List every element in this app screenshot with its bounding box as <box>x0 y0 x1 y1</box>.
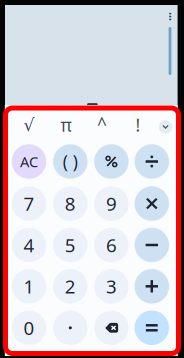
staticText: √ <box>23 115 34 135</box>
button[interactable]: Divide <box>135 144 169 179</box>
button[interactable]: 2 <box>53 269 87 304</box>
button[interactable]: Percent <box>94 144 129 179</box>
staticText: 8 <box>65 191 76 216</box>
staticText: 5 <box>65 233 76 257</box>
button[interactable]: Plus <box>135 269 169 304</box>
staticText: 3 <box>106 274 117 299</box>
staticText: 9 <box>106 191 117 216</box>
button[interactable]: Equals <box>135 311 169 345</box>
button[interactable]: π <box>51 112 81 138</box>
button[interactable]: Decimal point <box>53 311 87 345</box>
button[interactable]: ( ) <box>53 144 87 179</box>
button[interactable]: Minus <box>135 228 169 262</box>
button[interactable]: 7 <box>12 186 46 221</box>
staticText: ^ <box>97 112 107 135</box>
staticText: ! <box>135 113 140 136</box>
staticText: 1 <box>23 274 34 299</box>
button[interactable]: 0 <box>12 311 46 345</box>
staticText: 7 <box>23 191 34 216</box>
button[interactable]: Delete <box>94 311 129 345</box>
button[interactable]: √ <box>14 112 44 138</box>
button[interactable]: 1 <box>12 269 46 304</box>
staticText: 6 <box>106 233 117 257</box>
staticText: 4 <box>23 233 34 257</box>
button[interactable]: ! <box>123 112 153 138</box>
button[interactable]: 3 <box>94 269 129 304</box>
button[interactable]: ^ <box>87 111 117 137</box>
button[interactable]: 5 <box>53 228 87 262</box>
button[interactable]: Show more functions <box>155 117 175 137</box>
staticText: π <box>60 113 71 136</box>
button[interactable]: Multiply <box>135 186 169 221</box>
staticText: 0 <box>23 315 34 340</box>
button[interactable]: 8 <box>53 186 87 221</box>
button[interactable]: AC <box>12 144 46 179</box>
staticText: AC <box>20 152 38 171</box>
button[interactable]: 6 <box>94 228 129 262</box>
staticText: 2 <box>65 274 76 299</box>
button[interactable]: 4 <box>12 228 46 262</box>
staticText: ( ) <box>63 150 78 173</box>
button[interactable]: More options <box>163 8 177 24</box>
button[interactable]: 9 <box>94 186 129 221</box>
